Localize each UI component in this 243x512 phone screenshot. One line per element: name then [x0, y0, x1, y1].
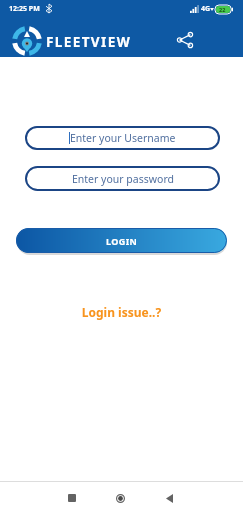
button[interactable]: Enter your Username — [25, 126, 220, 150]
button[interactable]: LOGIN — [16, 228, 227, 253]
button[interactable]: Enter your password — [25, 166, 220, 191]
staticText: 22 — [219, 6, 226, 13]
staticText: LOGIN — [106, 235, 138, 247]
staticText: Enter your Username — [70, 131, 176, 145]
staticText: 4G — [201, 4, 211, 14]
staticText: FLEETVIEW — [46, 33, 132, 51]
staticText: 12:25 PM — [9, 4, 40, 14]
button[interactable] — [172, 27, 198, 53]
button[interactable] — [110, 488, 130, 508]
button[interactable] — [159, 488, 179, 508]
button[interactable]: Login issue..? — [0, 304, 243, 320]
staticText: Enter your password — [72, 172, 174, 186]
button[interactable] — [62, 488, 82, 508]
